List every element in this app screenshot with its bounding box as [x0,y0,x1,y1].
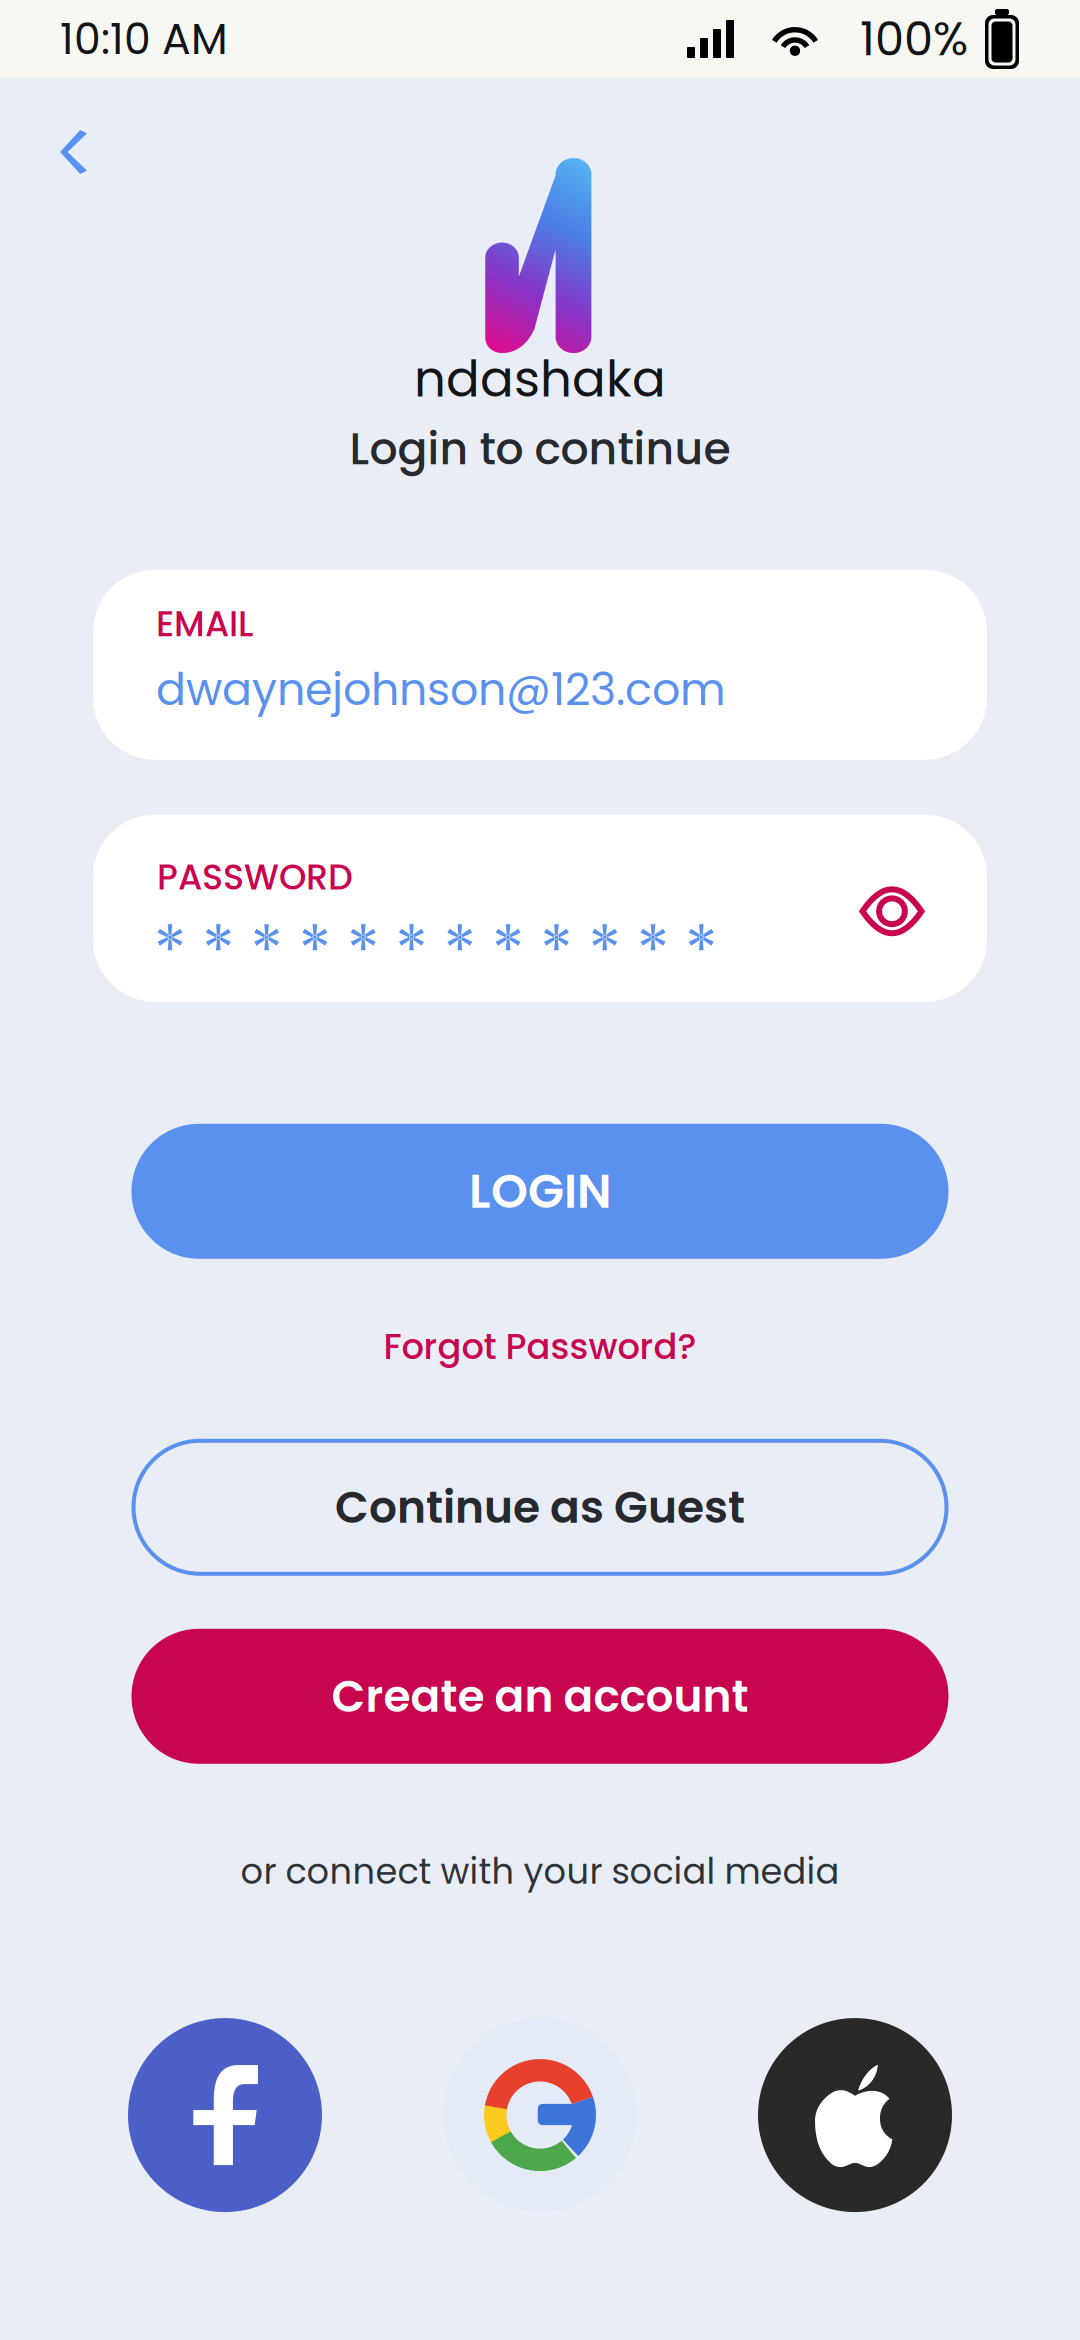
staticText: Login to continue [349,418,730,480]
button[interactable]: Back [0,104,123,200]
staticText: Forgot Password? [383,1322,696,1371]
staticText: EMAIL [156,600,253,648]
staticText: LOGIN [469,1158,611,1224]
staticText: PASSWORD [157,853,353,902]
button[interactable]: Continue with Apple [758,2018,952,2212]
staticText: Create an account [331,1666,748,1727]
staticText: or connect with your social media [240,1847,839,1896]
button[interactable]: Show password [835,864,949,959]
staticText: 100% [860,7,968,71]
staticText: Continue as Guest [335,1477,745,1538]
button[interactable]: Continue with Facebook [128,2018,322,2212]
staticText: 10:10 AM [60,9,228,69]
button[interactable]: Create an account [131,1629,948,1764]
button[interactable]: Continue as Guest [133,1441,946,1574]
staticText: ndashaka [414,344,666,414]
button[interactable]: Forgot Password? [363,1320,716,1374]
button[interactable]: Continue with Google [443,2018,637,2212]
staticText: dwaynejohnson@123.com [156,658,726,720]
button[interactable]: LOGIN [131,1124,948,1259]
